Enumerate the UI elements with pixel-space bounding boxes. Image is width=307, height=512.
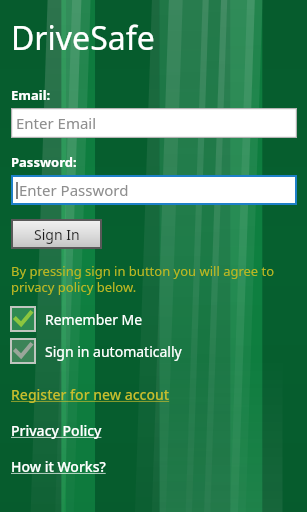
staticText: Enter Email	[16, 113, 97, 133]
button[interactable]: Enter Email	[11, 108, 297, 138]
button[interactable]: Remember Me	[11, 307, 297, 331]
staticText: DriveSafe	[11, 16, 155, 60]
button[interactable]: How it Works?	[11, 457, 106, 476]
staticText: Sign In	[34, 225, 80, 244]
button[interactable]: Register for new accout	[11, 385, 170, 404]
staticText: How it Works?	[11, 457, 106, 476]
staticText: By pressing sign in button you will agre…	[11, 262, 275, 295]
button[interactable]: Privacy Policy	[11, 421, 102, 440]
staticText: Password:	[11, 153, 77, 171]
staticText: Privacy Policy	[11, 421, 102, 440]
button[interactable]: Sign In	[11, 219, 102, 249]
staticText: Email:	[11, 86, 51, 104]
button[interactable]: Sign in automatically	[11, 339, 297, 363]
staticText: Register for new accout	[11, 385, 170, 404]
staticText: Sign in automatically	[45, 342, 182, 361]
button[interactable]: Enter Password	[11, 175, 297, 205]
staticText: Enter Password	[19, 180, 129, 200]
staticText: Remember Me	[45, 310, 143, 329]
